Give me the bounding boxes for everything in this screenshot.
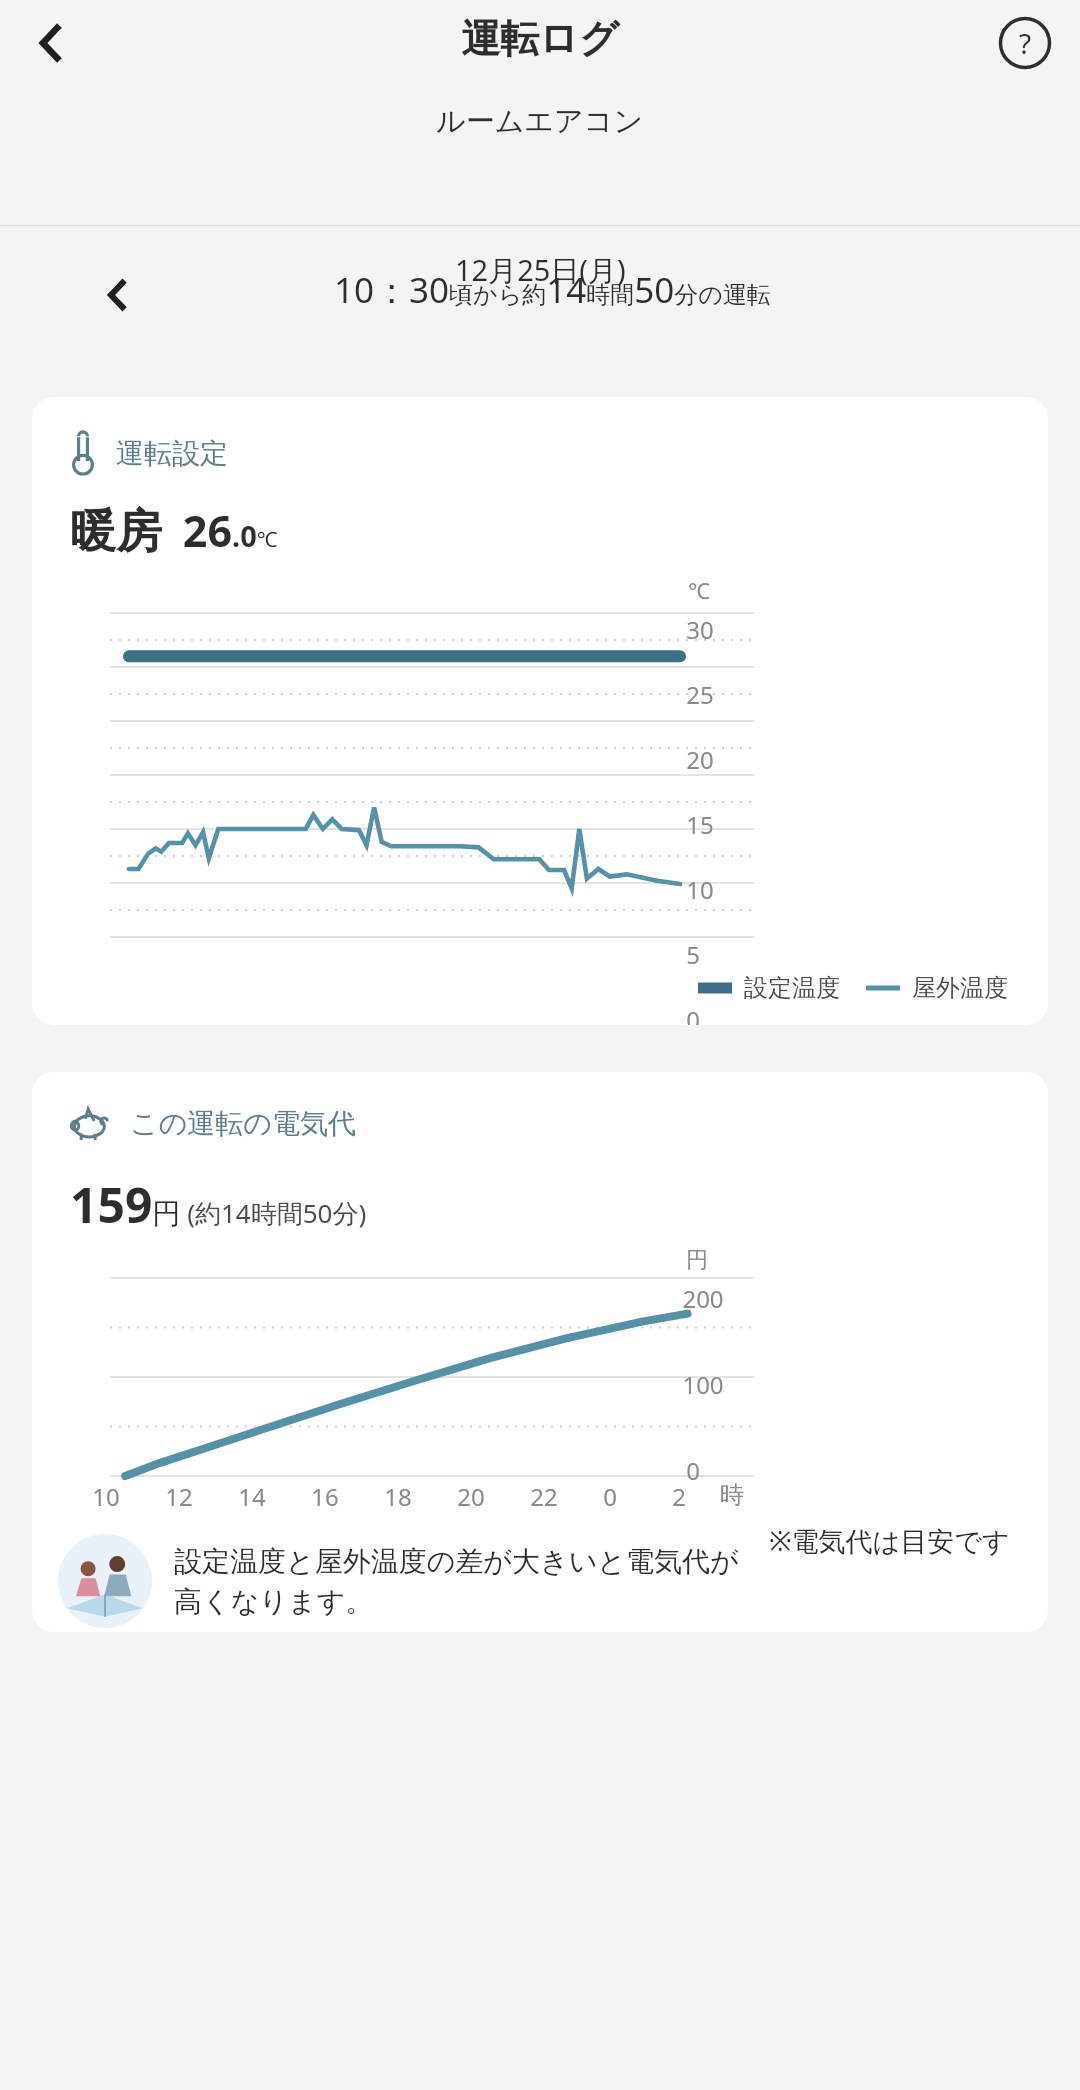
staticText: 10：30頃から約14時間50分の運転	[334, 266, 771, 314]
staticText: 暖房 26.0℃	[70, 501, 278, 561]
staticText: ※電気代は目安です	[769, 1522, 1010, 1559]
staticText: 設定温度と屋外温度の差が大きいと電気代が高くなります。	[174, 1544, 744, 1619]
staticText: 12月25日(月)	[455, 250, 626, 290]
staticText: 10	[92, 1480, 120, 1513]
staticText: 100	[682, 1368, 724, 1401]
staticText: 12	[165, 1480, 193, 1513]
staticText: 25	[686, 678, 714, 711]
button[interactable]: Help	[986, 4, 1064, 82]
staticText: 0	[686, 1003, 700, 1025]
staticText: 設定温度	[744, 973, 840, 1003]
staticText: 0	[603, 1480, 617, 1513]
staticText: 14	[238, 1480, 266, 1513]
staticText: この運転の電気代	[130, 1106, 356, 1141]
staticText: 円	[686, 1246, 708, 1274]
staticText: 2	[672, 1480, 686, 1513]
staticText: 16	[311, 1480, 339, 1513]
staticText: 屋外温度	[912, 973, 1008, 1003]
staticText: 30	[686, 613, 714, 646]
staticText: 200	[682, 1282, 724, 1315]
staticText: 22	[530, 1480, 558, 1513]
staticText: ?	[1019, 24, 1032, 62]
button[interactable]: この運転の電気代	[32, 1072, 1048, 1632]
staticText: 時	[720, 1480, 744, 1510]
staticText: 20	[686, 743, 714, 776]
staticText: ルームエアコン	[436, 103, 644, 140]
staticText: 運転設定	[116, 436, 228, 471]
staticText: 5	[686, 938, 700, 971]
staticText: 10	[686, 873, 714, 906]
staticText: 18	[384, 1480, 412, 1513]
button[interactable]: 運転設定	[32, 397, 1048, 1025]
button[interactable]: Previous period	[82, 258, 156, 332]
button[interactable]: Back	[14, 4, 92, 82]
staticText: 運転ログ	[461, 14, 619, 63]
staticText: 20	[457, 1480, 485, 1513]
staticText: 0	[686, 1454, 700, 1487]
staticText: 15	[686, 808, 714, 841]
staticText: ℃	[688, 575, 710, 605]
staticText: 159円 (約14時間50分)	[70, 1172, 367, 1237]
